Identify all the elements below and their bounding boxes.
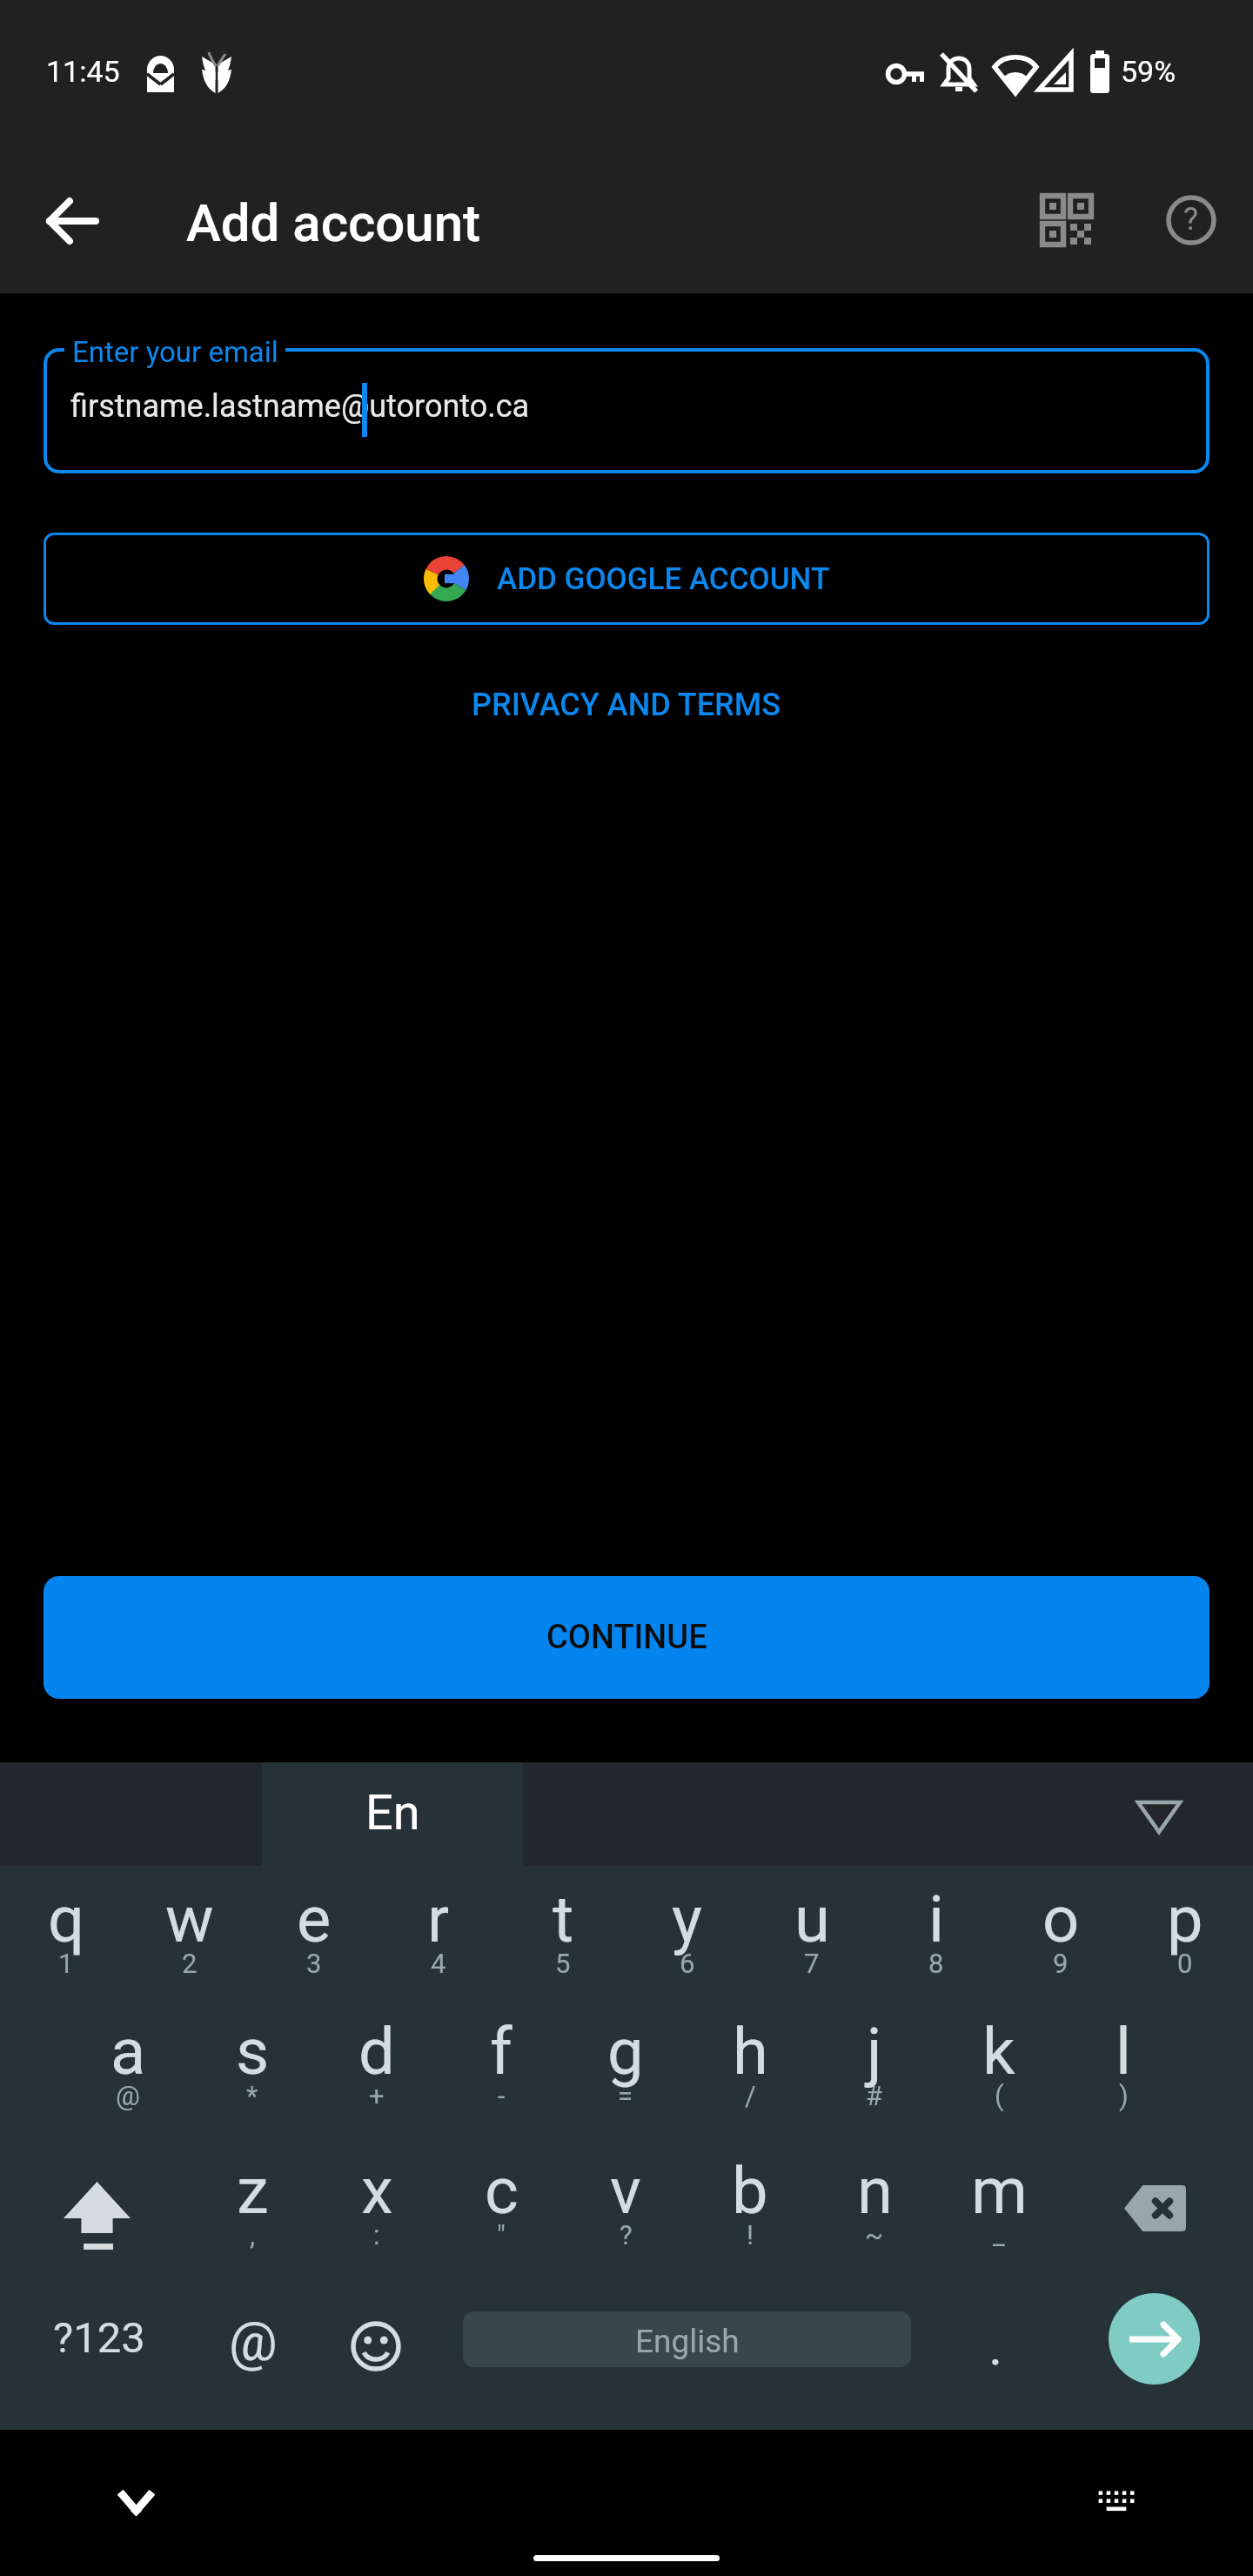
staticText: - [498, 2080, 506, 2111]
button[interactable]: Backspace [1093, 2137, 1218, 2282]
button[interactable]: u [749, 1866, 874, 1998]
button[interactable]: Help [1149, 178, 1233, 262]
staticText: m [971, 2153, 1028, 2229]
staticText: w [165, 1882, 214, 1957]
staticText: g [607, 2014, 644, 2090]
staticText: 1 [58, 1948, 74, 1979]
button[interactable]: PRIVACY AND TERMS [426, 663, 827, 747]
staticText: n [857, 2153, 893, 2229]
staticText: ) [1119, 2080, 1129, 2111]
button[interactable]: x [314, 2137, 439, 2282]
button[interactable]: q [3, 1866, 129, 1998]
staticText: i [928, 1882, 944, 1957]
button[interactable]: b [687, 2137, 813, 2282]
button[interactable]: a [65, 1998, 191, 2137]
button[interactable]: t [500, 1866, 626, 1998]
button[interactable]: y [625, 1866, 750, 1998]
button[interactable]: ?123 [26, 2282, 174, 2430]
button[interactable]: Switch keyboard [1075, 2459, 1158, 2543]
staticText: 11:45 [46, 54, 120, 89]
staticText: 6 [680, 1948, 695, 1979]
staticText: En [365, 1784, 420, 1841]
button[interactable]: Hide keyboard [94, 2461, 178, 2545]
staticText: " [497, 2219, 506, 2251]
button[interactable]: m [936, 2137, 1062, 2282]
button[interactable]: c [439, 2137, 564, 2282]
button[interactable]: n [812, 2137, 937, 2282]
button[interactable]: s [190, 1998, 315, 2137]
staticText: + [369, 2080, 385, 2111]
button[interactable]: j [812, 1998, 937, 2137]
staticText: ~ [865, 2219, 884, 2251]
staticText: ( [995, 2080, 1004, 2111]
staticText: q [48, 1882, 85, 1957]
staticText: z [237, 2153, 269, 2229]
staticText: 9 [1053, 1948, 1069, 1979]
staticText: = [618, 2080, 633, 2111]
button[interactable]: . [935, 2282, 1060, 2430]
button[interactable]: d [314, 1998, 439, 2137]
button[interactable]: @ [191, 2282, 316, 2430]
button[interactable]: k [936, 1998, 1062, 2137]
staticText: 4 [431, 1948, 446, 1979]
staticText: t [553, 1882, 574, 1957]
staticText: : [373, 2219, 380, 2251]
staticText: 5 [555, 1948, 571, 1979]
staticText: 0 [1177, 1948, 1193, 1979]
staticText: firstname.lastname@utoronto.ca [70, 388, 530, 425]
button[interactable]: i [874, 1866, 999, 1998]
staticText: l [1116, 2014, 1131, 2090]
button[interactable]: ADD GOOGLE ACCOUNT [44, 533, 1209, 625]
button[interactable]: e [251, 1866, 377, 1998]
staticText: c [485, 2153, 519, 2229]
staticText: ?123 [53, 2313, 145, 2363]
button[interactable]: Back [30, 179, 114, 263]
button[interactable]: CONTINUE [44, 1576, 1209, 1699]
staticText: o [1042, 1882, 1080, 1957]
staticText: , [250, 2219, 256, 2251]
staticText: CONTINUE [546, 1618, 707, 1657]
button[interactable]: Enter [1109, 2293, 1200, 2385]
button[interactable]: En [262, 1762, 523, 1866]
staticText: b [732, 2153, 768, 2229]
staticText: s [236, 2014, 270, 2090]
staticText: 7 [804, 1948, 820, 1979]
staticText: p [1167, 1882, 1203, 1957]
staticText: * [246, 2080, 258, 2111]
button[interactable]: r [376, 1866, 501, 1998]
staticText: ? [1183, 201, 1199, 238]
button[interactable]: Scan QR code [1025, 178, 1109, 262]
staticText: English [635, 2323, 740, 2360]
staticText: 8 [928, 1948, 944, 1979]
button[interactable]: Emoji [313, 2282, 439, 2430]
staticText: j [867, 2014, 882, 2090]
button[interactable]: firstname.lastname@utoronto.ca [44, 348, 1209, 473]
staticText: 59% [1121, 54, 1176, 89]
button[interactable]: o [998, 1866, 1123, 1998]
button[interactable]: w [127, 1866, 252, 1998]
button[interactable]: h [687, 1998, 813, 2137]
staticText: Add account [186, 192, 481, 253]
staticText: u [794, 1882, 830, 1957]
staticText: x [361, 2153, 393, 2229]
staticText: r [427, 1882, 450, 1957]
button[interactable]: z [190, 2137, 315, 2282]
staticText: a [111, 2014, 146, 2090]
staticText: v [610, 2153, 641, 2229]
staticText: ! [747, 2219, 754, 2251]
button[interactable]: f [439, 1998, 564, 2137]
button[interactable]: Shift [34, 2137, 159, 2282]
staticText: # [866, 2080, 883, 2111]
button[interactable]: g [563, 1998, 688, 2137]
button[interactable]: English [463, 2311, 911, 2367]
button[interactable]: Expand suggestions [1136, 1794, 1183, 1841]
staticText: f [490, 2014, 513, 2090]
staticText: 2 [182, 1948, 198, 1979]
staticText: d [358, 2014, 395, 2090]
staticText: 3 [306, 1948, 322, 1979]
staticText: e [297, 1882, 332, 1957]
staticText: ? [620, 2219, 633, 2251]
button[interactable]: v [563, 2137, 688, 2282]
button[interactable]: p [1122, 1866, 1248, 1998]
button[interactable]: l [1061, 1998, 1186, 2137]
